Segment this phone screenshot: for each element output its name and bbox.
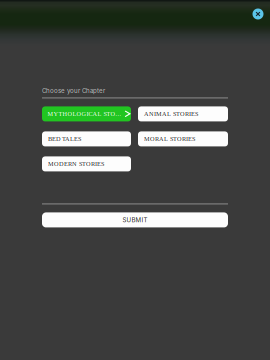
- button[interactable]: Close: [249, 5, 267, 23]
- button[interactable]: ANIMAL STORIES: [138, 106, 228, 121]
- button[interactable]: MODERN STORIES: [42, 156, 131, 171]
- staticText: MYTHOLOGICAL STO...: [47, 110, 121, 117]
- staticText: Choose your Chapter: [42, 87, 105, 94]
- staticText: MODERN STORIES: [48, 160, 104, 167]
- button[interactable]: MYTHOLOGICAL STO...: [42, 106, 131, 121]
- staticText: MORAL STORIES: [144, 135, 195, 142]
- button[interactable]: BED TALES: [42, 131, 131, 146]
- staticText: SUBMIT: [122, 216, 147, 224]
- button[interactable]: SUBMIT: [42, 212, 228, 227]
- staticText: ANIMAL STORIES: [144, 110, 198, 117]
- staticText: BED TALES: [48, 135, 81, 142]
- button[interactable]: MORAL STORIES: [138, 131, 228, 146]
